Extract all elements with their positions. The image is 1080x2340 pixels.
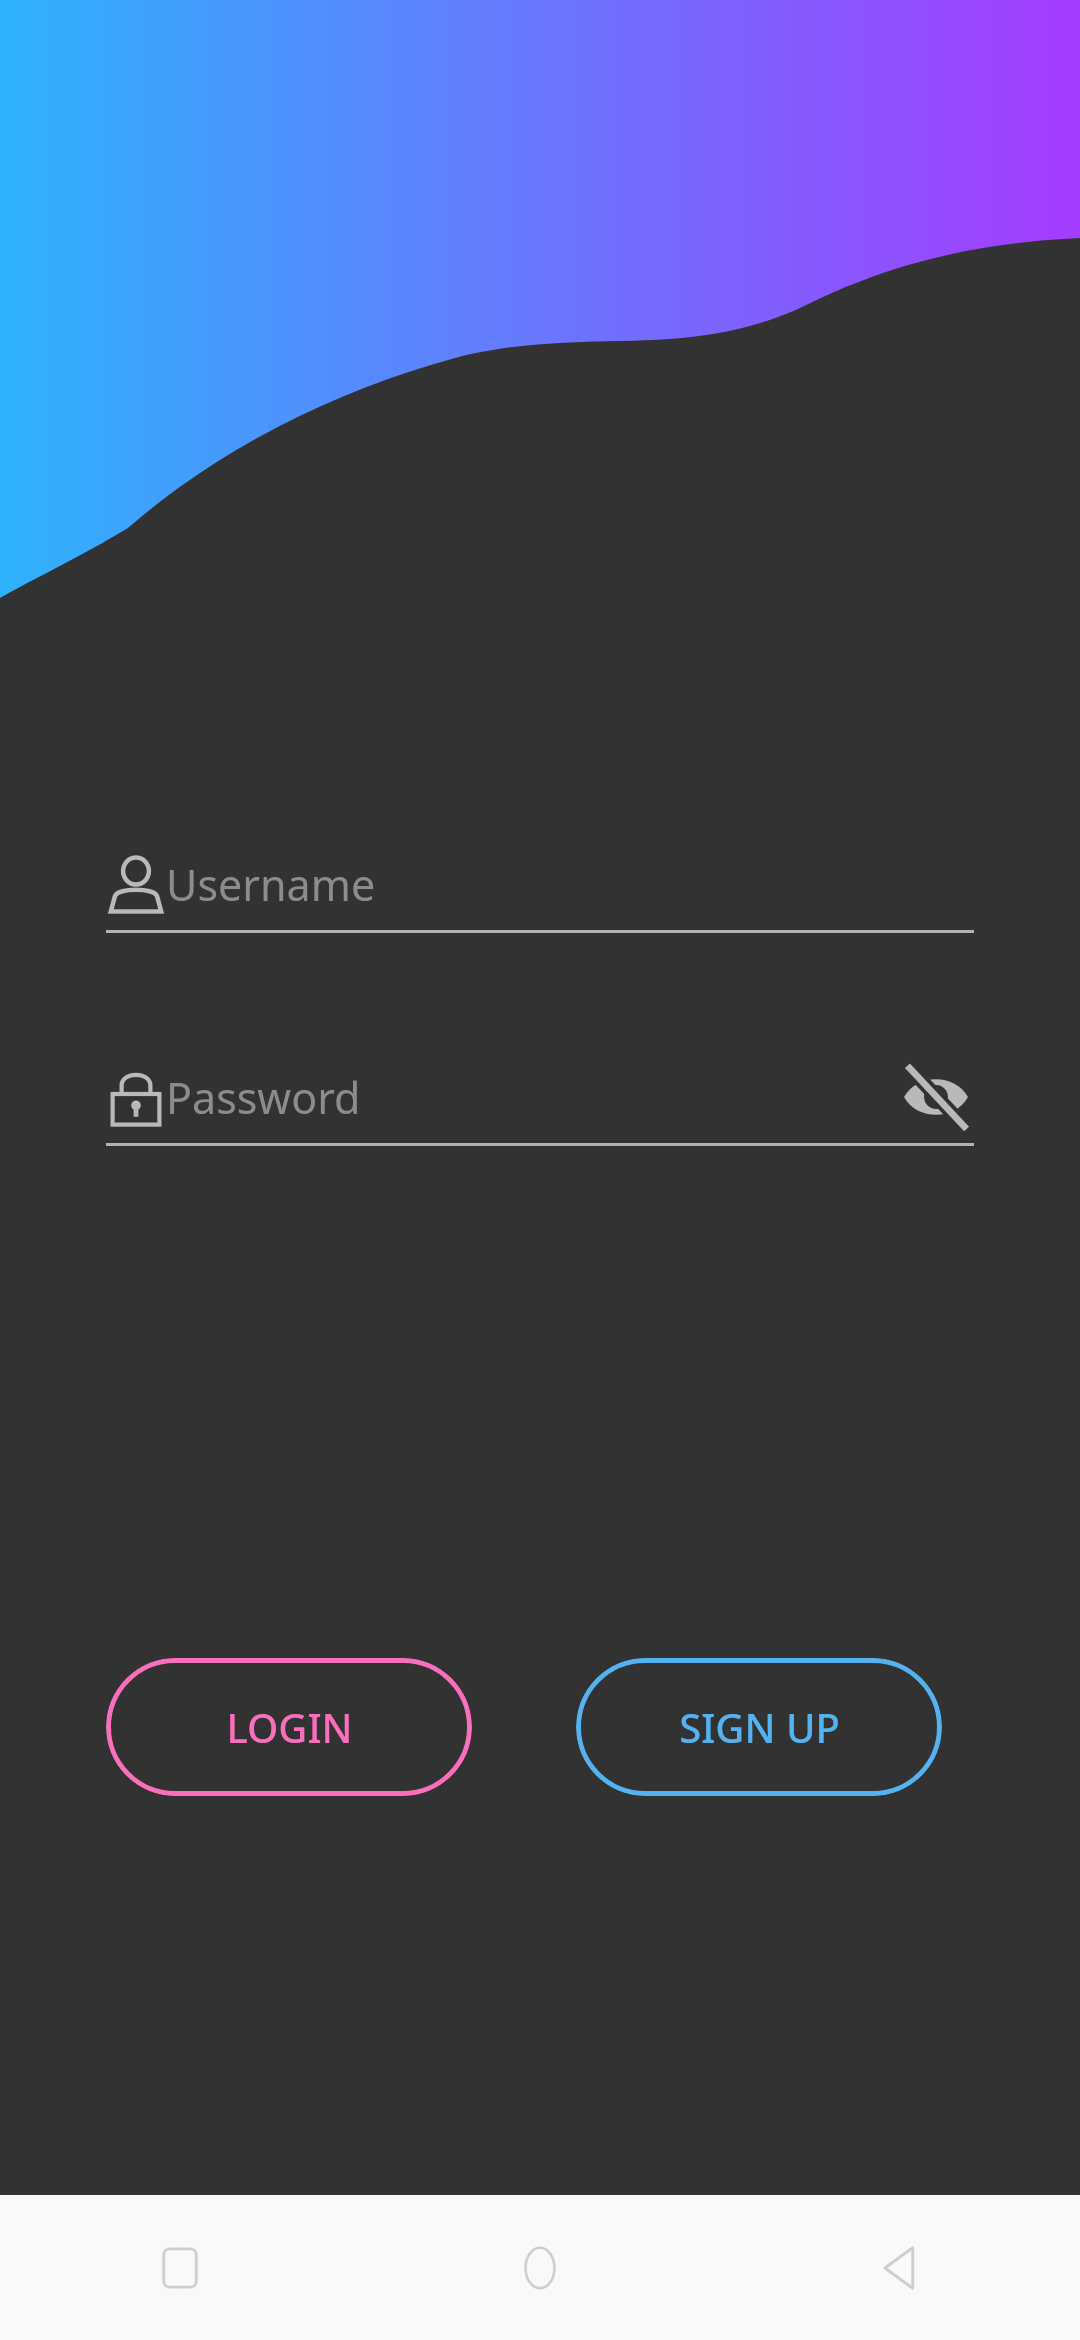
button[interactable]: Back [720,2195,1080,2340]
button[interactable]: Recents [0,2195,360,2340]
staticText: Username [166,855,376,914]
staticText: SIGN UP [679,1700,840,1754]
button[interactable]: Username [106,838,974,933]
button[interactable]: SIGN UP [576,1658,942,1796]
button[interactable]: LOGIN [106,1658,472,1796]
button[interactable]: Password [106,1051,974,1146]
button[interactable]: Show password [898,1059,974,1135]
staticText: Password [166,1068,361,1127]
staticText: LOGIN [226,1700,353,1754]
